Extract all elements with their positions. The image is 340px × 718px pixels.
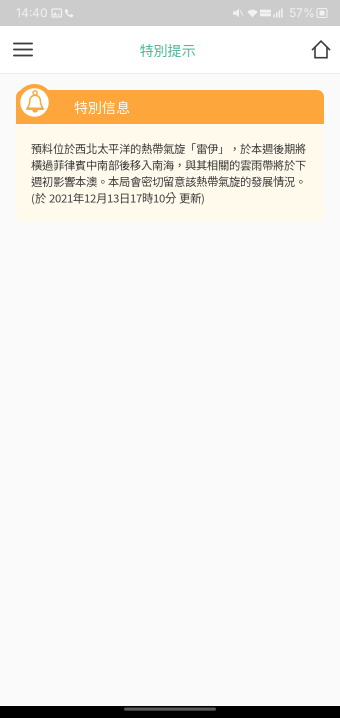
staticText: 特別提示 [139,40,195,60]
button[interactable]: Menu [1,26,45,73]
staticText: (於 2021年12月13日17時10分 更新) [31,189,205,206]
button[interactable]: Home [110,706,230,718]
button[interactable]: Home [305,26,337,73]
staticText: 特別信息 [74,97,130,117]
staticText: 57% [289,6,315,20]
staticText: 14:40 [16,6,48,20]
staticText: 預料位於西北太平洋的熱帶氣旋「雷伊」，於本週後期將橫過菲律賓中南部後移入南海，與… [31,140,306,189]
